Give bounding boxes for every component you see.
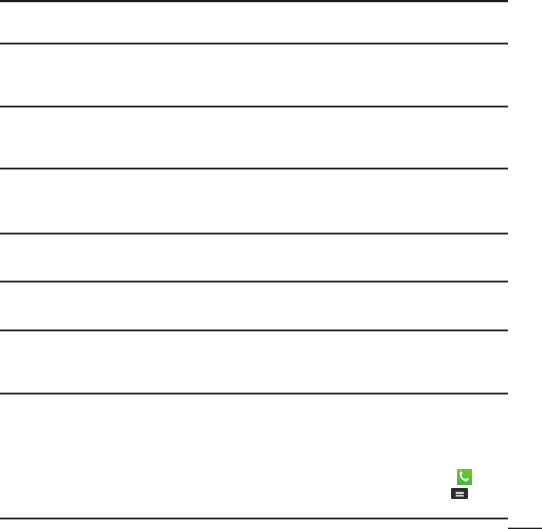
- button[interactable]: Phone: [457, 469, 472, 485]
- button[interactable]: Menu: [451, 488, 468, 499]
- button[interactable]: [0, 466, 542, 514]
- button[interactable]: [0, 336, 542, 401]
- button[interactable]: [0, 86, 542, 149]
- button[interactable]: [0, 212, 542, 274]
- button[interactable]: [0, 1, 542, 43]
